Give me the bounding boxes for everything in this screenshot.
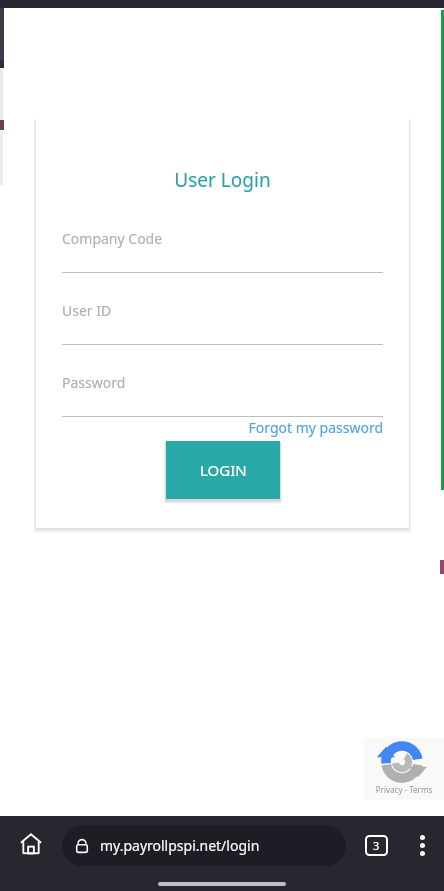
button[interactable]: my.payrollpspi.net/login	[62, 825, 346, 866]
staticText: User ID	[62, 301, 112, 320]
button[interactable]: Forgot my password	[62, 415, 383, 439]
button[interactable]: User ID	[62, 299, 383, 345]
staticText: Password	[62, 373, 126, 392]
staticText: Privacy - Terms	[364, 784, 444, 795]
staticText: User Login	[36, 167, 409, 193]
staticText: Forgot my password	[248, 418, 383, 437]
button[interactable]: Company Code	[62, 227, 383, 273]
staticText: 3	[373, 838, 380, 853]
button[interactable]: More options	[404, 827, 441, 864]
button[interactable]: LOGIN	[166, 441, 280, 499]
staticText: Company Code	[62, 229, 163, 248]
button[interactable]: Home	[10, 823, 52, 865]
button[interactable]: Tabs, 3 open	[358, 827, 395, 864]
button[interactable]: Password	[62, 371, 383, 417]
staticText: LOGIN	[200, 460, 247, 480]
button[interactable]: reCAPTCHA Privacy Terms	[364, 738, 444, 800]
staticText: my.payrollpspi.net/login	[100, 836, 260, 855]
